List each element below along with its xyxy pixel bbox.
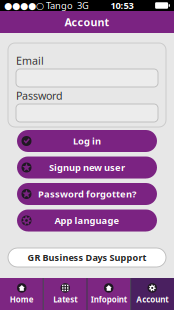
button[interactable]: Home xyxy=(0,278,43,310)
button[interactable]: App language xyxy=(17,209,157,231)
staticText: Password xyxy=(16,88,63,103)
staticText: GR Business Days Support xyxy=(27,251,146,264)
staticText: Latest xyxy=(53,294,77,305)
staticText: 10:53 xyxy=(110,0,133,12)
staticText: Email xyxy=(16,53,44,68)
button[interactable]: Account xyxy=(130,278,174,310)
button[interactable]: Infopoint xyxy=(87,278,130,310)
staticText: Account xyxy=(64,15,109,29)
staticText: App language xyxy=(54,214,119,227)
button[interactable]: Latest xyxy=(43,278,87,310)
button[interactable]: Password forgotten? xyxy=(17,183,157,205)
staticText: Infopoint xyxy=(91,294,127,305)
staticText: Password forgotten? xyxy=(38,188,136,200)
staticText: ●●●●○ Tango 3G xyxy=(4,0,89,12)
staticText: Home xyxy=(10,294,34,305)
staticText: Log in xyxy=(73,135,101,147)
button[interactable]: Log in xyxy=(17,130,157,152)
button[interactable]: Signup new user xyxy=(17,156,157,178)
staticText: Signup new user xyxy=(49,161,125,174)
staticText: Account xyxy=(136,294,168,305)
button[interactable]: GR Business Days Support xyxy=(8,248,166,267)
